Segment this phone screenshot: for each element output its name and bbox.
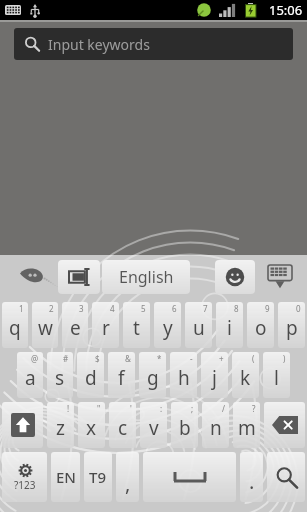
staticText: ;: [191, 403, 194, 414]
staticText: r: [102, 315, 110, 341]
staticText: l: [274, 365, 279, 391]
staticText: 5: [141, 303, 146, 314]
staticText: &: [125, 353, 131, 364]
button[interactable]: EN: [51, 452, 80, 502]
button[interactable]: 2: [32, 302, 58, 348]
button[interactable]: ': [109, 402, 136, 448]
staticText: 4: [110, 303, 115, 314]
staticText: 15:06: [269, 1, 303, 19]
button[interactable]: 9: [247, 302, 274, 348]
staticText: q: [9, 315, 21, 341]
staticText: (: [252, 353, 255, 364]
button[interactable]: 6: [154, 302, 181, 348]
staticText: u: [193, 315, 205, 341]
button[interactable]: #: [47, 352, 73, 398]
staticText: j: [212, 365, 217, 391]
staticText: /: [222, 403, 225, 414]
button[interactable]: Symbols and settings: [2, 452, 47, 502]
staticText: w: [38, 315, 53, 341]
button[interactable]: Search: [267, 452, 305, 502]
staticText: 1: [19, 303, 24, 314]
staticText: m: [238, 415, 256, 441]
staticText: h: [178, 365, 190, 391]
staticText: o: [255, 315, 267, 341]
staticText: x: [86, 415, 97, 441]
staticText: 3: [79, 303, 84, 314]
staticText: ": [97, 403, 101, 414]
button[interactable]: T9: [84, 452, 112, 502]
button[interactable]: 7: [185, 302, 212, 348]
button[interactable]: ,: [116, 452, 139, 502]
staticText: ?: [252, 403, 256, 414]
button[interactable]: +: [201, 352, 228, 398]
staticText: v: [149, 415, 159, 441]
button[interactable]: -: [170, 352, 197, 398]
button[interactable]: !: [47, 402, 74, 448]
staticText: a: [25, 365, 36, 391]
button[interactable]: ): [263, 352, 290, 398]
staticText: y: [163, 315, 173, 341]
button[interactable]: Backspace: [264, 402, 305, 448]
staticText: $: [95, 353, 100, 364]
staticText: @: [31, 353, 39, 364]
staticText: c: [118, 415, 128, 441]
staticText: z: [56, 415, 65, 441]
button[interactable]: 3: [62, 302, 88, 348]
staticText: i: [227, 315, 232, 341]
button[interactable]: ?: [233, 402, 260, 448]
button[interactable]: Input keywords: [14, 28, 293, 60]
staticText: k: [240, 365, 251, 391]
button[interactable]: Space: [143, 452, 236, 502]
staticText: T9: [89, 467, 107, 487]
staticText: .: [249, 468, 255, 495]
staticText: +: [219, 353, 224, 364]
staticText: Input keywords: [48, 35, 150, 54]
button[interactable]: *: [139, 352, 166, 398]
button[interactable]: 5: [123, 302, 150, 348]
staticText: 6: [172, 303, 177, 314]
button[interactable]: $: [77, 352, 104, 398]
staticText: n: [210, 415, 222, 441]
button[interactable]: Keyboard layout: [58, 260, 100, 294]
staticText: *: [157, 353, 162, 364]
staticText: ,: [125, 470, 131, 497]
staticText: 2: [49, 303, 54, 314]
button[interactable]: :: [140, 402, 167, 448]
button[interactable]: ;: [171, 402, 198, 448]
button[interactable]: @: [17, 352, 43, 398]
staticText: -: [190, 353, 193, 364]
staticText: e: [70, 315, 81, 341]
button[interactable]: Emoji: [215, 260, 255, 294]
staticText: 9: [265, 303, 270, 314]
button[interactable]: 4: [92, 302, 119, 348]
staticText: :: [160, 403, 163, 414]
button[interactable]: ": [78, 402, 105, 448]
button[interactable]: .: [240, 452, 263, 502]
button[interactable]: /: [202, 402, 229, 448]
staticText: English: [119, 266, 174, 288]
staticText: ': [130, 403, 132, 414]
button[interactable]: Shift: [2, 402, 43, 448]
staticText: s: [55, 365, 65, 391]
staticText: 0: [296, 303, 301, 314]
staticText: b: [179, 415, 191, 441]
staticText: ): [283, 353, 286, 364]
button[interactable]: (: [232, 352, 259, 398]
staticText: p: [286, 315, 298, 341]
staticText: t: [133, 315, 140, 341]
button[interactable]: Keyboard theme: [10, 255, 54, 299]
staticText: d: [85, 365, 97, 391]
button[interactable]: 1: [2, 302, 28, 348]
staticText: EN: [56, 467, 76, 487]
staticText: f: [118, 365, 125, 391]
button[interactable]: &: [108, 352, 135, 398]
staticText: ?123: [14, 478, 36, 492]
button[interactable]: 8: [216, 302, 243, 348]
button[interactable]: 0: [278, 302, 305, 348]
staticText: 7: [203, 303, 208, 314]
button[interactable]: English: [102, 260, 190, 294]
staticText: #: [63, 353, 69, 364]
staticText: !: [67, 403, 70, 414]
staticText: g: [147, 365, 159, 391]
button[interactable]: Hide keyboard: [261, 258, 299, 296]
